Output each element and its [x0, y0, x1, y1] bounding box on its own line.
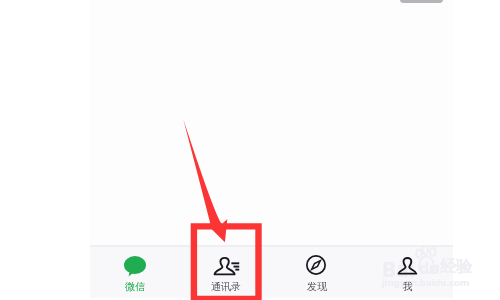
staticText: du	[419, 257, 440, 279]
staticText: 微信	[125, 280, 145, 293]
staticText: 发现	[307, 280, 327, 293]
button[interactable]: Contacts tab	[180, 247, 271, 298]
staticText: Bai	[382, 255, 415, 284]
staticText: jingyan.baidu.com	[382, 276, 470, 289]
button[interactable]: Discover tab	[271, 247, 362, 298]
staticText: 经验	[440, 257, 472, 277]
staticText: 我	[403, 280, 413, 293]
button[interactable]: Me tab	[362, 247, 453, 298]
button[interactable]: WeChat tab	[90, 247, 180, 298]
staticText: 通讯录	[211, 280, 241, 293]
